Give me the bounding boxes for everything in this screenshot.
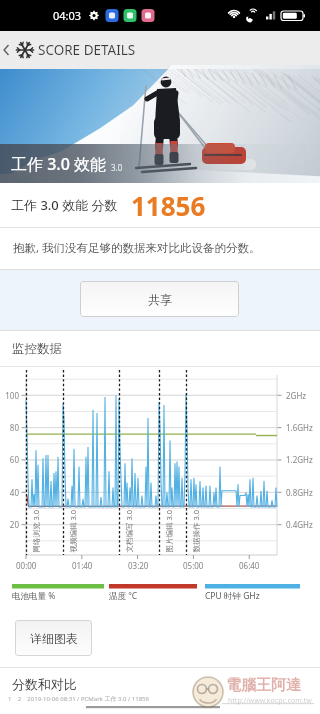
staticText: 3.0 [111, 162, 123, 173]
staticText: 01:40 [72, 560, 93, 571]
staticText: 工作 3.0 效能 [11, 153, 106, 175]
button[interactable]: 共享 [80, 281, 239, 317]
staticText: 抱歉, 我们没有足够的数据来对比此设备的分数。 [13, 240, 261, 256]
staticText: http://www.kocpc.com.tw [228, 696, 312, 706]
staticText: 100 [0, 390, 19, 401]
staticText: 分数和对比 [12, 676, 77, 692]
staticText: 06:40 [239, 560, 260, 571]
staticText: 0.4GHz [286, 519, 313, 530]
staticText: 工作 3.0 效能 分数 [11, 196, 118, 214]
staticText: 1.2GHz [286, 454, 313, 465]
staticText: 05:00 [183, 560, 204, 571]
staticText: 電腦王阿達 [226, 676, 301, 695]
staticText: 80 [0, 422, 19, 433]
button[interactable]: Back [0, 31, 14, 69]
staticText: 数据操作 3.0 [190, 509, 200, 552]
staticText: 0.8GHz [286, 487, 313, 498]
staticText: 60 [0, 454, 19, 465]
staticText: 图片编辑 3.0 [163, 509, 173, 552]
staticText: 视频编辑 3.0 [67, 509, 77, 552]
button[interactable]: 详细图表 [15, 620, 92, 656]
staticText: 文档编写 3.0 [123, 509, 133, 552]
staticText: 1.6GHz [286, 422, 313, 433]
staticText: 04:03 [53, 8, 82, 23]
staticText: 40 [0, 487, 19, 498]
staticText: 20 [0, 519, 19, 530]
staticText: 电池电量 % [12, 590, 56, 602]
staticText: 00:00 [16, 560, 37, 571]
staticText: 详细图表 [30, 631, 78, 646]
staticText: 2GHz [286, 390, 307, 401]
staticText: 共享 [148, 292, 172, 307]
staticText: 监控数据 [12, 341, 62, 357]
staticText: 网络浏览 3.0 [30, 509, 40, 552]
staticText: 1 2 2019-10-06 08:31 / PCMark 工作 3.0 / 1… [8, 695, 149, 703]
staticText: 11856 [131, 188, 206, 223]
staticText: CPU 时钟 GHz [205, 590, 260, 602]
staticText: 温度 °C [109, 590, 138, 602]
staticText: 03:20 [128, 560, 149, 571]
staticText: SCORE DETAILS [38, 41, 136, 59]
